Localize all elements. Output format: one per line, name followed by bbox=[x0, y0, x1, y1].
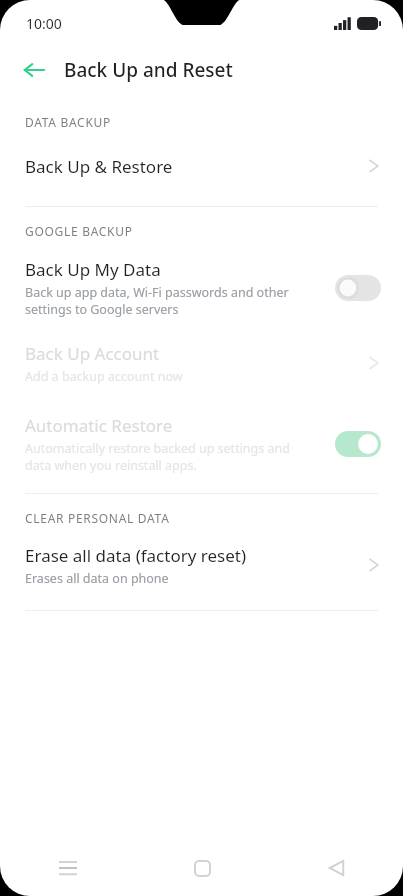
staticText: DATA BACKUP bbox=[25, 114, 111, 130]
button[interactable]: Home bbox=[135, 840, 269, 896]
staticText: Back Up & Restore bbox=[25, 155, 173, 178]
staticText: Automatically restore backed up settings… bbox=[25, 440, 290, 474]
staticText: Back Up and Reset bbox=[64, 57, 233, 83]
staticText: Back up app data, Wi-Fi passwords and ot… bbox=[25, 284, 289, 318]
button[interactable]: Back Up My Data toggle bbox=[335, 275, 381, 301]
button[interactable]: Recent apps bbox=[0, 840, 135, 896]
button[interactable]: Back Up Account bbox=[0, 339, 403, 387]
staticText: Add a backup account now bbox=[25, 368, 183, 385]
staticText: GOOGLE BACKUP bbox=[25, 223, 133, 239]
staticText: Erases all data on phone bbox=[25, 570, 169, 587]
button[interactable]: Back Up My Data bbox=[0, 253, 403, 323]
button[interactable]: Back Up & Restore bbox=[0, 144, 403, 188]
button[interactable]: Back bbox=[269, 840, 403, 896]
staticText: 10:00 bbox=[26, 14, 62, 33]
staticText: Erase all data (factory reset) bbox=[25, 544, 247, 567]
button[interactable]: Back bbox=[14, 50, 54, 90]
staticText: Automatic Restore bbox=[25, 414, 173, 437]
button[interactable]: Automatic Restore bbox=[0, 409, 403, 479]
staticText: CLEAR PERSONAL DATA bbox=[25, 510, 170, 526]
staticText: Back Up My Data bbox=[25, 258, 161, 281]
button[interactable]: Automatic Restore toggle bbox=[335, 431, 381, 457]
button[interactable]: Erase all data (factory reset) bbox=[0, 540, 403, 590]
staticText: Back Up Account bbox=[25, 342, 160, 365]
